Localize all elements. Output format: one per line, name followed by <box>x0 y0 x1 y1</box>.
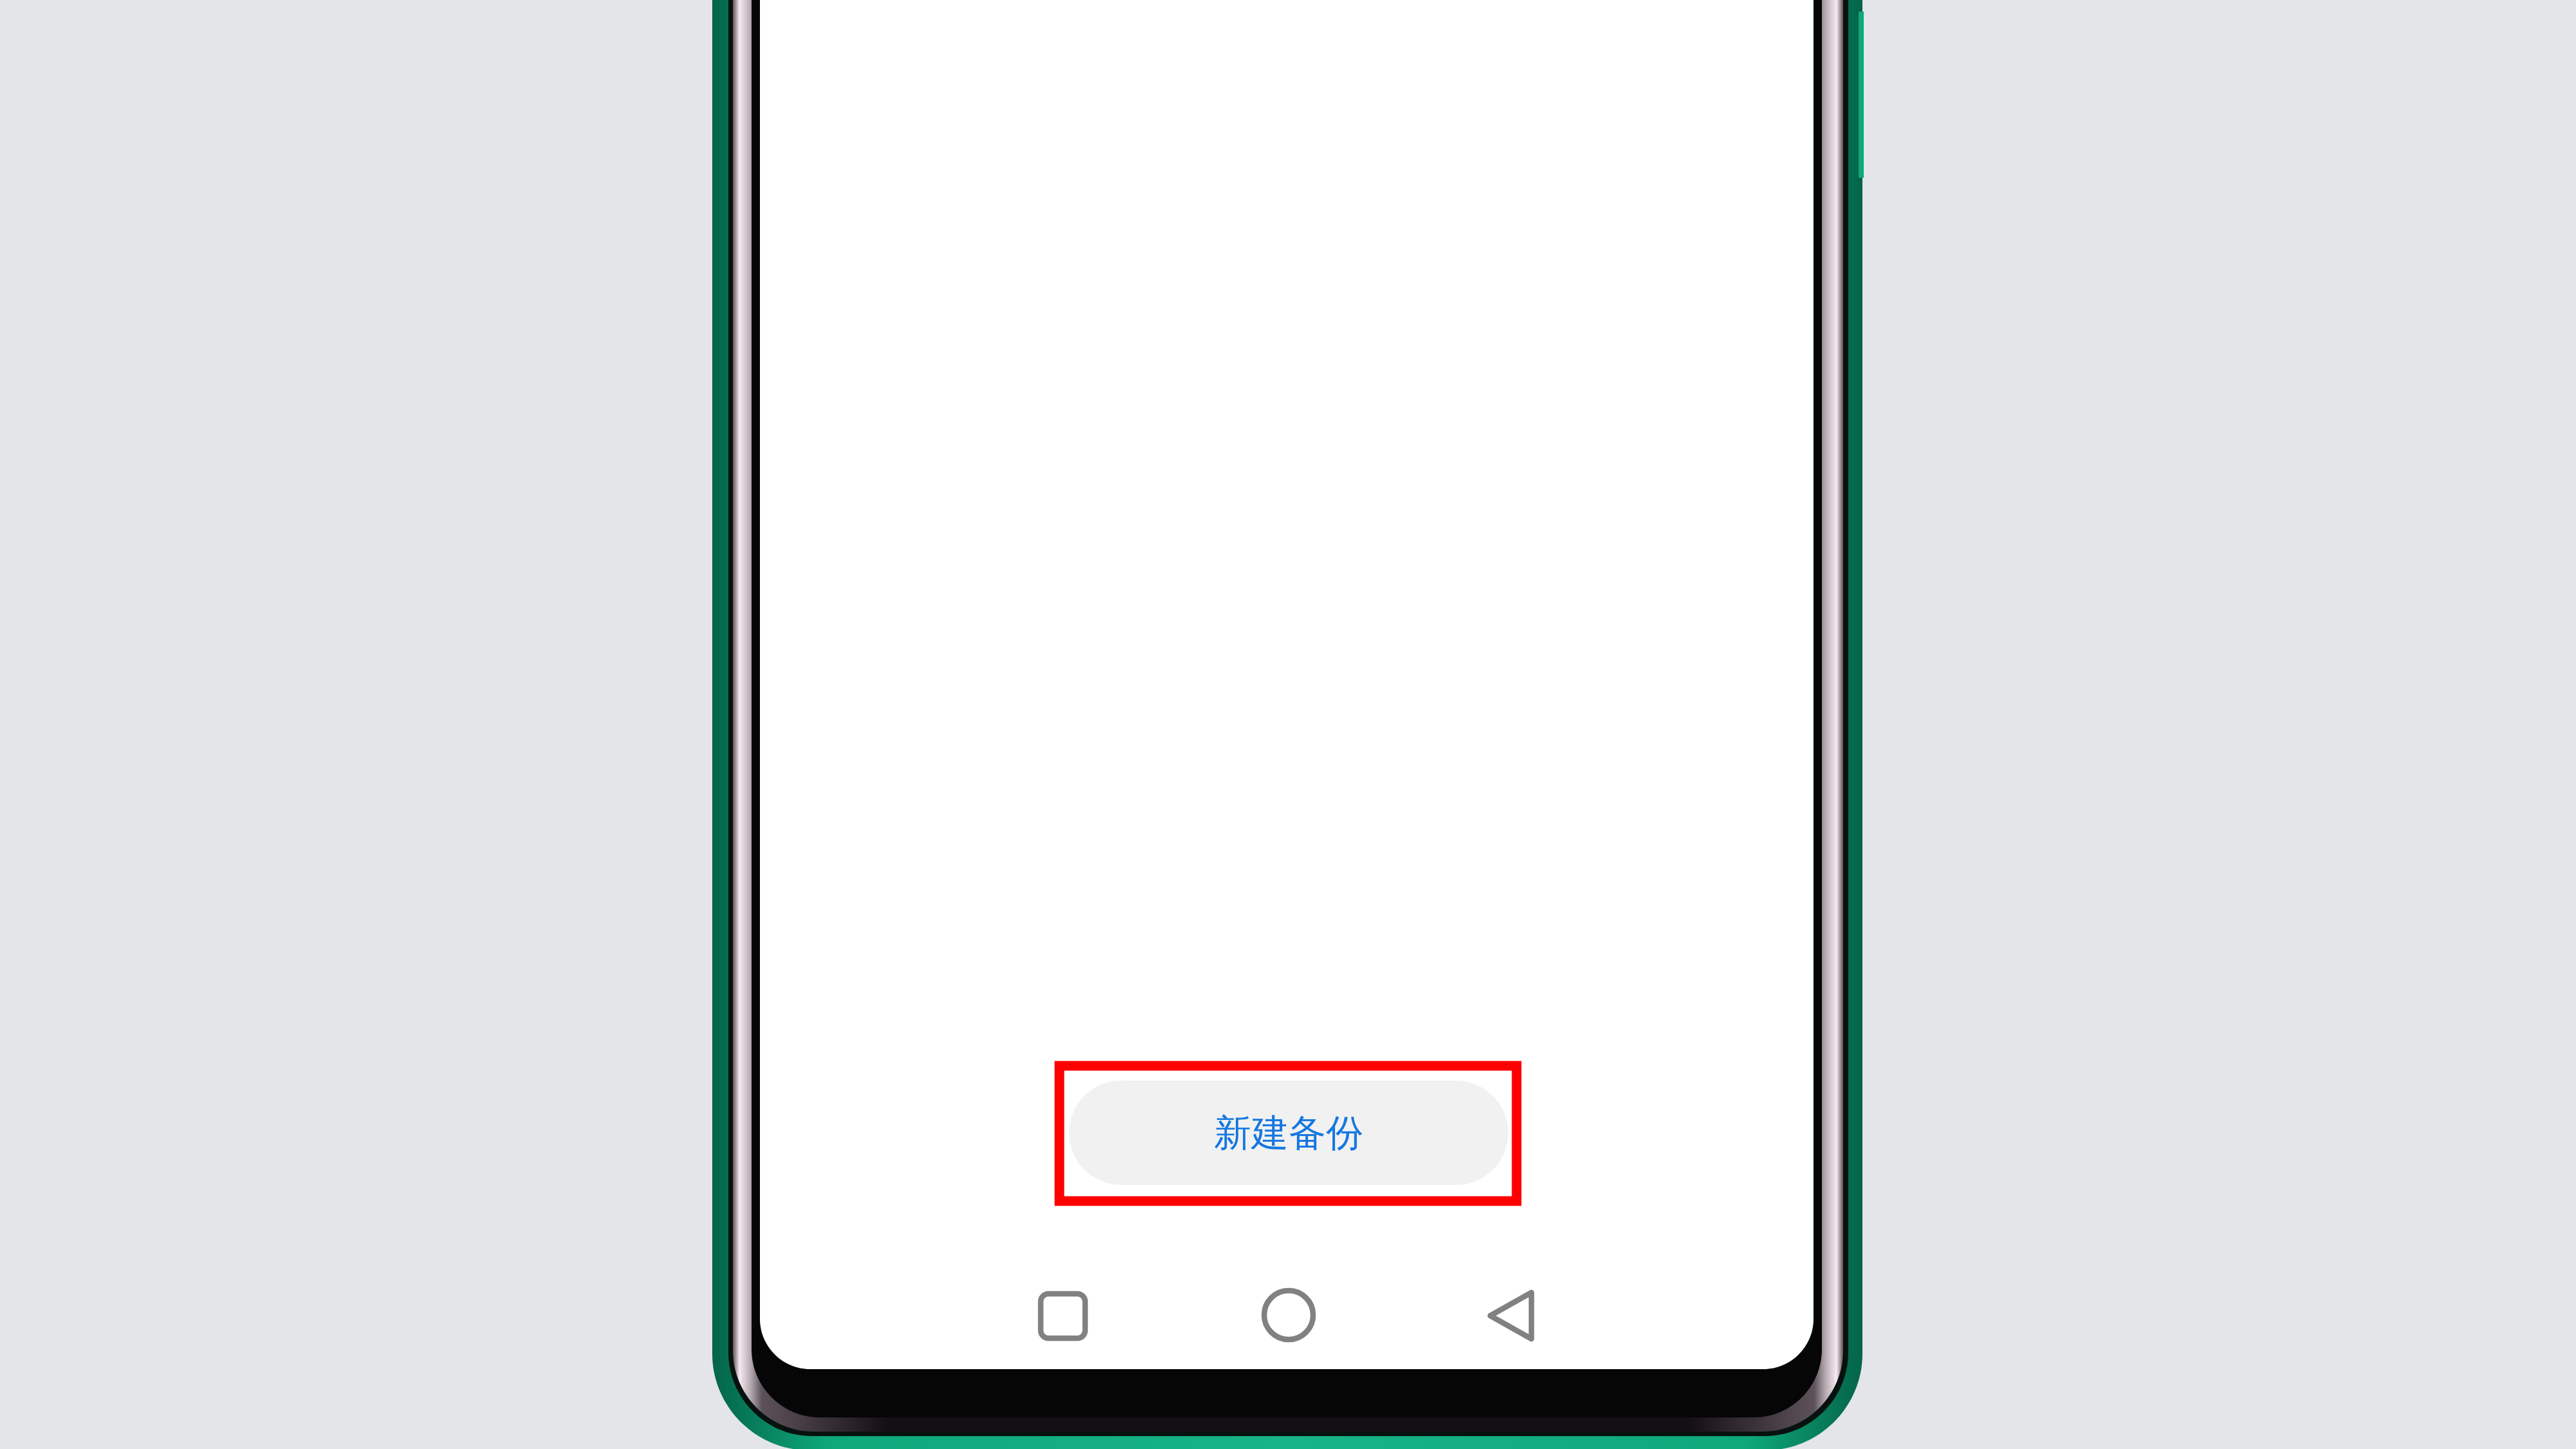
staticText: 新建备份 <box>1214 1110 1363 1157</box>
button[interactable]: 新建备份 <box>1069 1081 1508 1185</box>
button[interactable]: Back <box>1459 1264 1562 1367</box>
button[interactable]: Recent apps <box>1011 1264 1114 1367</box>
button[interactable]: Home <box>1237 1264 1340 1367</box>
